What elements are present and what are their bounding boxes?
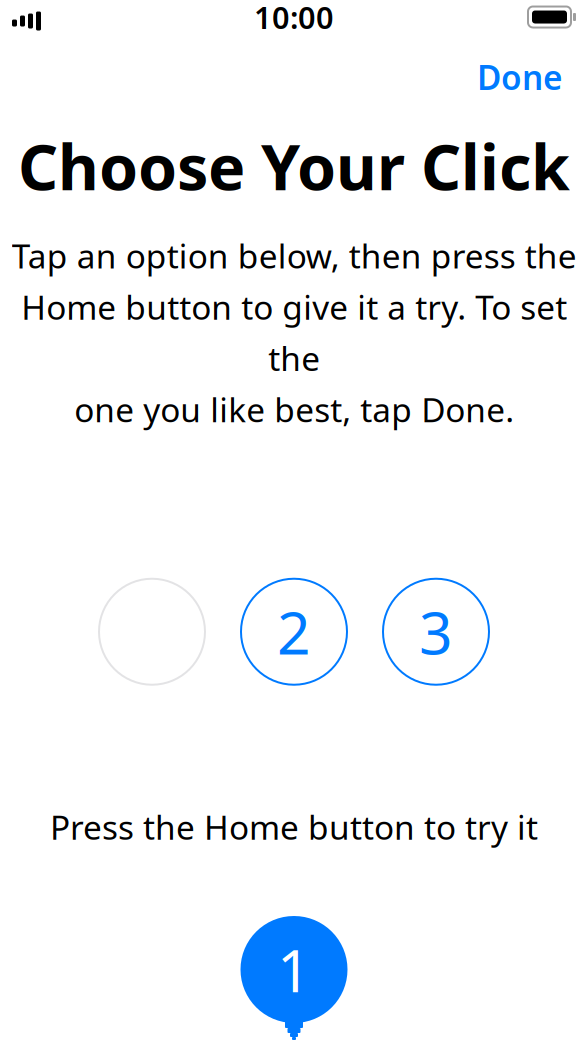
staticText: 3 [419,593,453,671]
button[interactable]: 3 [383,579,489,685]
button[interactable]: Done [463,46,577,108]
button[interactable]: Option 1, selected [99,579,205,685]
staticText: Done [477,55,563,99]
staticText: 2 [277,593,311,671]
staticText: 10:00 [254,0,334,37]
button[interactable]: 2 [241,579,347,685]
staticText: Press the Home button to try it [50,805,538,849]
staticText: Tap an option below, then press the Home… [11,233,576,432]
staticText: 1 [277,930,311,1008]
staticText: Choose Your Click [18,124,570,207]
